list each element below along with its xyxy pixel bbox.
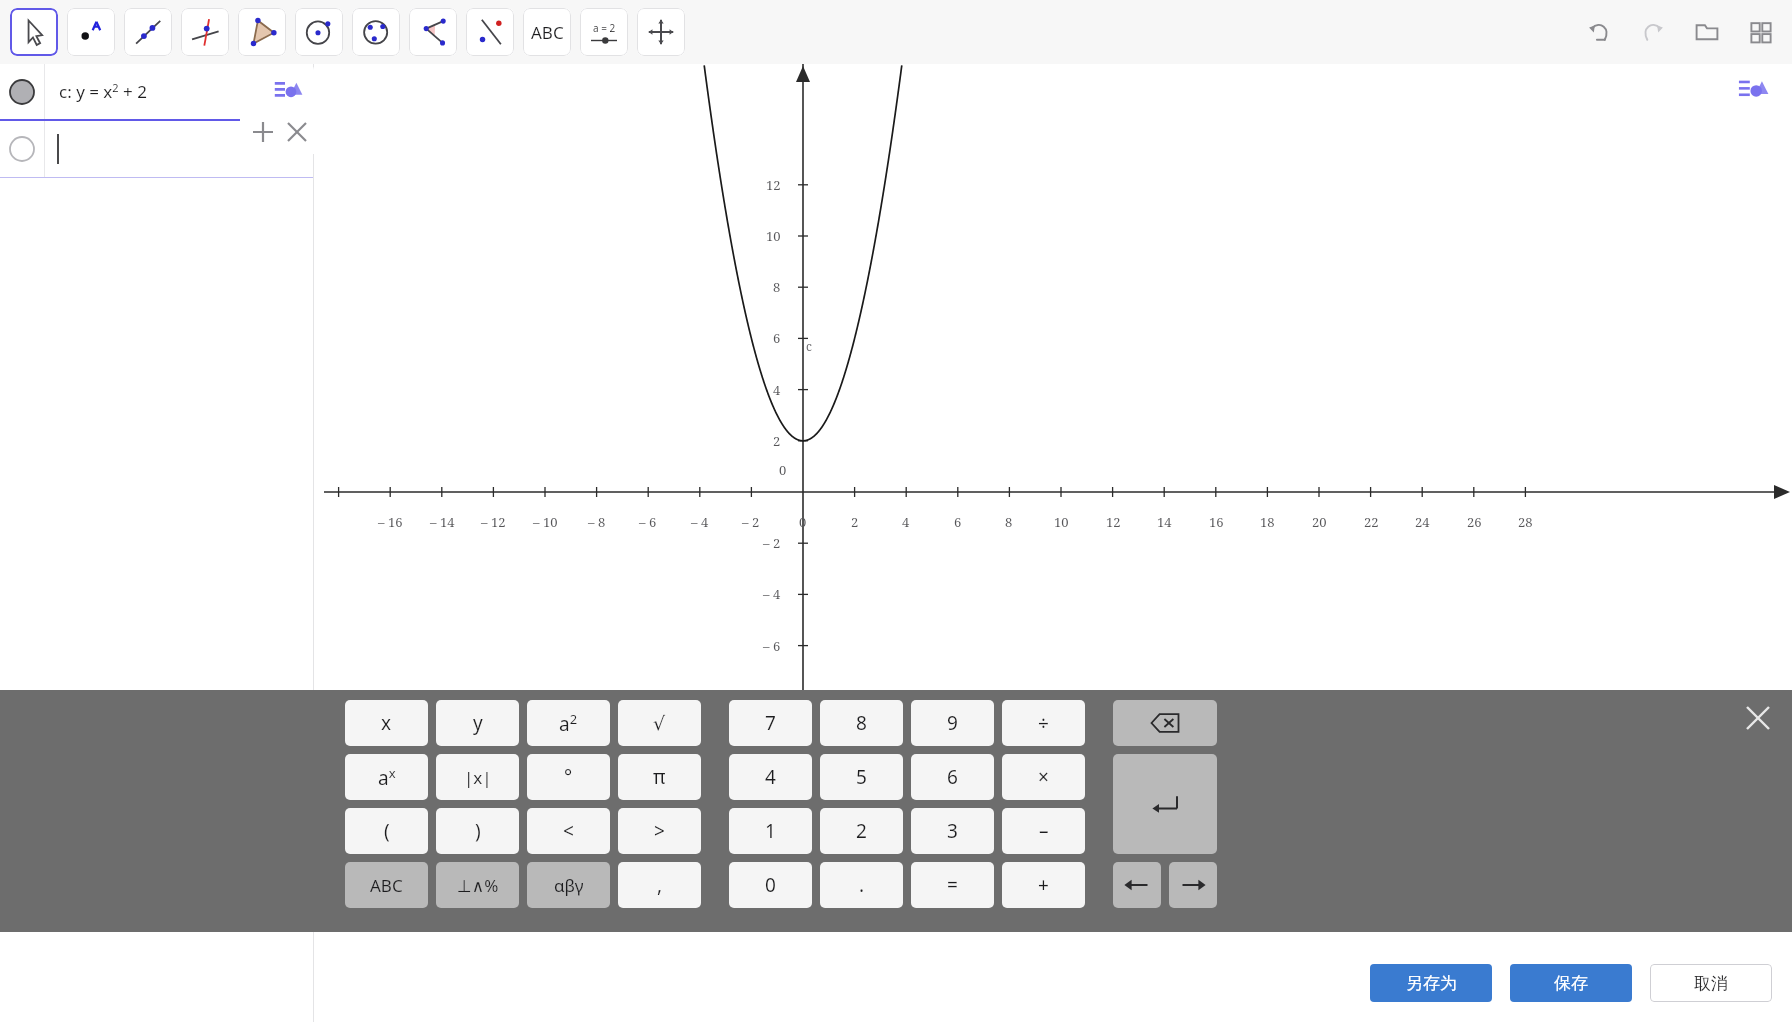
- button[interactable]: Perpendicular: [181, 8, 229, 56]
- button[interactable]: 0: [729, 862, 812, 908]
- button[interactable]: 8: [820, 700, 903, 746]
- button[interactable]: 1: [729, 808, 812, 854]
- button[interactable]: Undo: [1582, 15, 1616, 49]
- button[interactable]: Point: [67, 8, 115, 56]
- staticText: 26: [1467, 513, 1482, 531]
- button[interactable]: Polygon: [238, 8, 286, 56]
- button[interactable]: 7: [729, 700, 812, 746]
- staticText: 0: [779, 461, 787, 479]
- button[interactable]: 9: [911, 700, 994, 746]
- button[interactable]: Close: [280, 115, 314, 149]
- button[interactable]: 取消: [1650, 964, 1772, 1002]
- button[interactable]: Right: [1169, 862, 1217, 908]
- staticText: .: [859, 872, 865, 898]
- button[interactable]: y: [436, 700, 519, 746]
- button[interactable]: ⊥∧%: [436, 862, 519, 908]
- button[interactable]: Open file: [1690, 15, 1724, 49]
- staticText: αβγ: [554, 874, 584, 897]
- staticText: 9: [947, 710, 958, 736]
- staticText: – 16: [378, 513, 403, 531]
- staticText: 5: [856, 764, 867, 790]
- button[interactable]: Move: [10, 8, 58, 56]
- button[interactable]: 另存为: [1370, 964, 1492, 1002]
- button[interactable]: 3: [911, 808, 994, 854]
- button[interactable]: Redo: [1636, 15, 1670, 49]
- staticText: 8: [773, 278, 781, 296]
- button[interactable]: |x|: [436, 754, 519, 800]
- button[interactable]: Left: [1113, 862, 1161, 908]
- staticText: – 6: [763, 637, 781, 655]
- button[interactable]: √: [618, 700, 701, 746]
- staticText: 10: [766, 227, 781, 245]
- button[interactable]: Add: [246, 115, 280, 149]
- button[interactable]: ,: [618, 862, 701, 908]
- button[interactable]: 4: [729, 754, 812, 800]
- staticText: – 12: [481, 513, 506, 531]
- button[interactable]: <: [527, 808, 610, 854]
- button[interactable]: –: [1002, 808, 1085, 854]
- staticText: 6: [773, 329, 781, 347]
- staticText: (: [384, 818, 390, 844]
- staticText: 10: [1054, 513, 1069, 531]
- staticText: 2: [773, 432, 781, 450]
- button[interactable]: Conic: [352, 8, 400, 56]
- button[interactable]: +: [1002, 862, 1085, 908]
- staticText: <: [563, 818, 574, 844]
- button[interactable]: 2: [820, 808, 903, 854]
- button[interactable]: Pan: [637, 8, 685, 56]
- button[interactable]: °: [527, 754, 610, 800]
- staticText: √: [653, 712, 666, 734]
- button[interactable]: Menu: [1744, 15, 1778, 49]
- button[interactable]: ×: [1002, 754, 1085, 800]
- button[interactable]: π: [618, 754, 701, 800]
- button[interactable]: Circle: [295, 8, 343, 56]
- staticText: 2: [856, 818, 867, 844]
- button[interactable]: Enter: [1113, 754, 1217, 854]
- staticText: ABC: [531, 21, 564, 44]
- staticText: ABC: [370, 874, 403, 897]
- staticText: x: [381, 710, 392, 736]
- button[interactable]: Close keyboard: [1738, 698, 1778, 738]
- staticText: 7: [765, 710, 776, 736]
- button[interactable]: =: [911, 862, 994, 908]
- button[interactable]: Text: [523, 8, 571, 56]
- staticText: 16: [1209, 513, 1224, 531]
- staticText: y: [473, 710, 483, 736]
- staticText: 0: [799, 513, 807, 531]
- button[interactable]: 6: [911, 754, 994, 800]
- staticText: – 14: [430, 513, 455, 531]
- button[interactable]: Settings: [262, 64, 314, 116]
- staticText: – 2: [763, 534, 781, 552]
- staticText: 取消: [1694, 973, 1728, 994]
- button[interactable]: x: [345, 700, 428, 746]
- staticText: π: [653, 764, 666, 790]
- button[interactable]: >: [618, 808, 701, 854]
- staticText: |x|: [464, 766, 492, 789]
- button[interactable]: (: [345, 808, 428, 854]
- button[interactable]: ax: [345, 754, 428, 800]
- staticText: 3: [947, 818, 958, 844]
- button[interactable]: Slider: [580, 8, 628, 56]
- staticText: 另存为: [1406, 973, 1457, 994]
- staticText: 14: [1157, 513, 1172, 531]
- staticText: °: [564, 764, 573, 790]
- button[interactable]: ÷: [1002, 700, 1085, 746]
- button[interactable]: Backspace: [1113, 700, 1217, 746]
- button[interactable]: Line: [124, 8, 172, 56]
- button[interactable]: 保存: [1510, 964, 1632, 1002]
- button[interactable]: 5: [820, 754, 903, 800]
- staticText: a = 2: [593, 21, 616, 35]
- staticText: – 8: [588, 513, 606, 531]
- button[interactable]: αβγ: [527, 862, 610, 908]
- staticText: 28: [1518, 513, 1533, 531]
- button[interactable]: .: [820, 862, 903, 908]
- staticText: ax: [378, 764, 396, 790]
- button[interactable]: Angle: [409, 8, 457, 56]
- button[interactable]: Graphics view settings: [1730, 66, 1776, 112]
- button[interactable]: ABC: [345, 862, 428, 908]
- staticText: =: [947, 872, 958, 898]
- button[interactable]: a2: [527, 700, 610, 746]
- button[interactable]: Reflect: [466, 8, 514, 56]
- staticText: 6: [954, 513, 962, 531]
- button[interactable]: ): [436, 808, 519, 854]
